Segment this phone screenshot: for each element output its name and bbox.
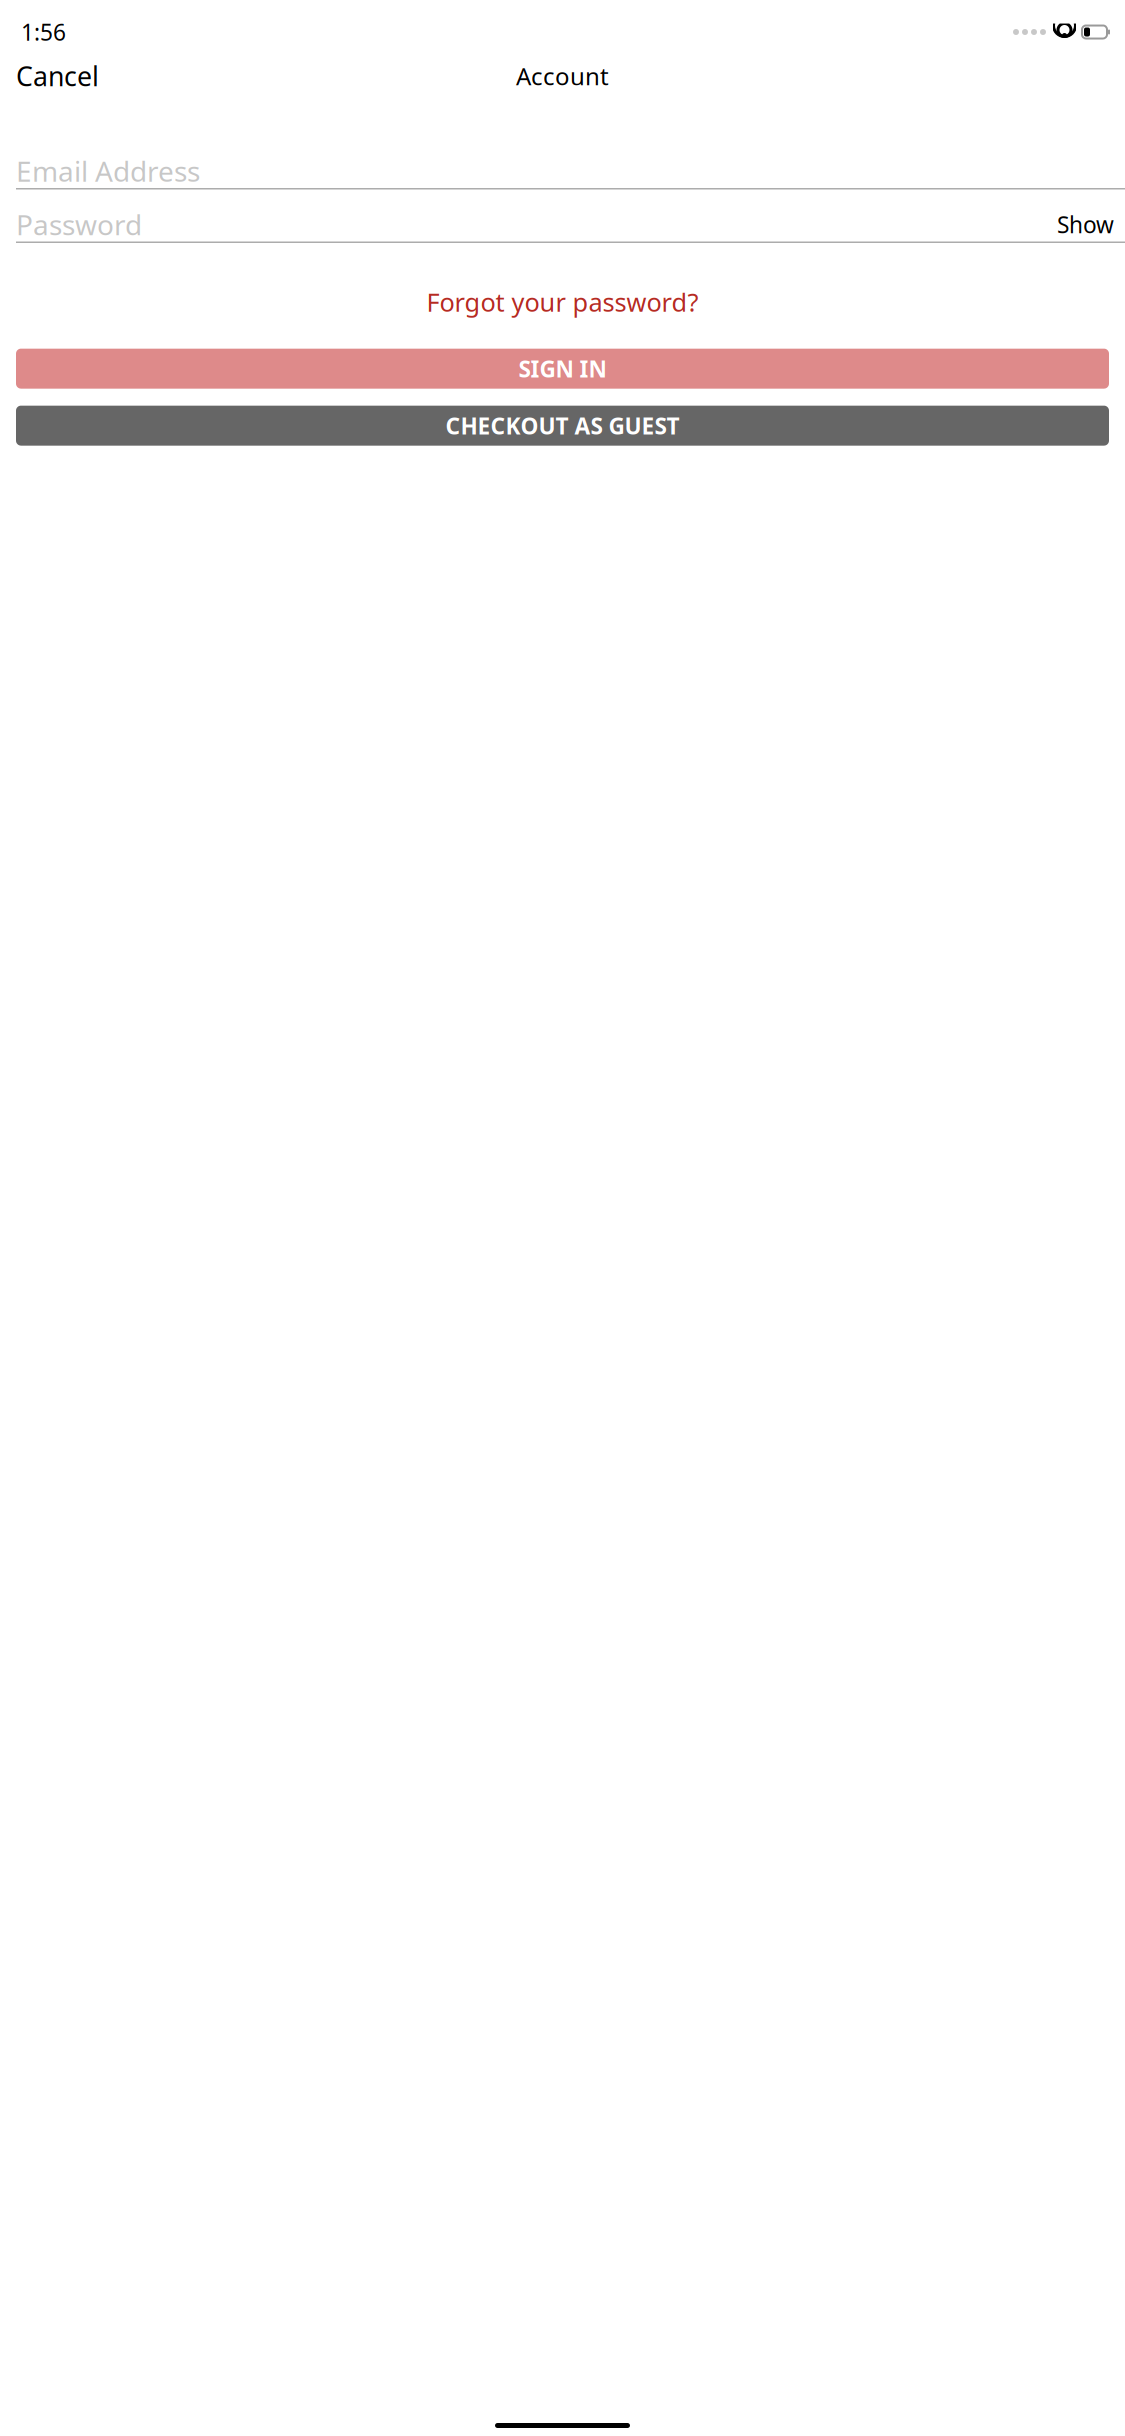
- staticText: Account: [516, 60, 609, 92]
- staticText: Forgot your password?: [426, 285, 698, 319]
- staticText: Show: [1057, 209, 1114, 239]
- button[interactable]: Cancel: [0, 50, 115, 102]
- button[interactable]: Show: [1045, 203, 1114, 245]
- button[interactable]: SIGN IN: [16, 349, 1109, 389]
- staticText: Cancel: [16, 58, 99, 94]
- button[interactable]: CHECKOUT AS GUEST: [16, 406, 1109, 446]
- button[interactable]: Forgot your password?: [414, 279, 710, 325]
- staticText: Email Address: [16, 152, 200, 190]
- staticText: CHECKOUT AS GUEST: [445, 411, 679, 441]
- staticText: SIGN IN: [518, 354, 606, 384]
- staticText: 1:56: [21, 17, 66, 47]
- staticText: Password: [16, 206, 142, 243]
